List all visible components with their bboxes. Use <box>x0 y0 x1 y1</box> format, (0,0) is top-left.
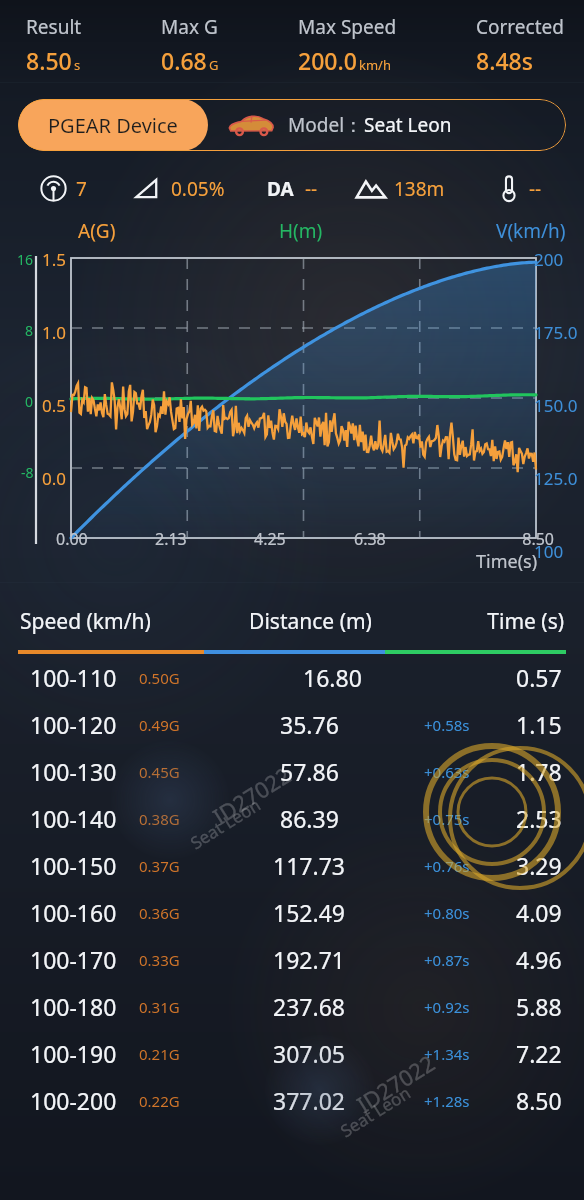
staticText: 377.02 <box>273 1085 345 1116</box>
staticText: 237.68 <box>273 991 345 1022</box>
staticText: 192.71 <box>273 944 345 975</box>
staticText: PGEAR Device <box>48 112 178 139</box>
staticText: 0.05% <box>171 176 225 202</box>
staticText: ID27022 <box>207 759 296 831</box>
staticText: 175.0 <box>534 321 578 344</box>
button[interactable]: PGEAR Device <box>18 99 208 151</box>
staticText: 1.15 <box>516 709 562 740</box>
button[interactable]: 100-140 <box>0 795 584 842</box>
staticText: +1.34s <box>424 1044 470 1064</box>
button[interactable]: 100-160 <box>0 889 584 936</box>
staticText: Time (s) <box>410 607 564 636</box>
other: Altitude <box>356 178 386 200</box>
other: Slope <box>133 175 160 202</box>
staticText: Corrected <box>476 14 564 40</box>
staticText: 8.48s <box>476 45 533 76</box>
staticText: 117.73 <box>273 850 345 881</box>
staticText: Max Speed <box>298 14 397 40</box>
staticText: A(G) <box>78 218 116 244</box>
button[interactable]: 100-120 <box>0 701 584 748</box>
staticText: +0.76s <box>424 856 470 876</box>
staticText: +0.75s <box>424 809 470 829</box>
staticText: 1.5 <box>42 248 67 271</box>
staticText: 100-160 <box>30 897 117 928</box>
staticText: Distance (m) <box>211 607 410 636</box>
staticText: 100-180 <box>30 991 117 1022</box>
other: Vehicle <box>228 113 274 137</box>
staticText: 16.80 <box>303 662 362 693</box>
staticText: 100-110 <box>30 662 117 693</box>
staticText: Seat Leon <box>364 112 452 138</box>
staticText: 2.13 <box>155 528 254 550</box>
staticText: DA <box>267 176 294 202</box>
button[interactable]: 100-180 <box>0 983 584 1030</box>
other: GPS satellites <box>40 175 67 202</box>
staticText: Speed (km/h) <box>20 607 211 636</box>
staticText: 0.50G <box>139 668 180 688</box>
staticText: -- <box>305 176 318 202</box>
staticText: 1.78 <box>516 756 562 787</box>
staticText: 138m <box>394 176 445 202</box>
staticText: 0.36G <box>139 903 180 923</box>
staticText: 200.0 <box>298 45 357 76</box>
staticText: Result <box>26 14 82 40</box>
staticText: 0.37G <box>139 856 180 876</box>
staticText: 100-200 <box>30 1085 117 1116</box>
staticText: Seat Leon <box>186 793 265 854</box>
staticText: 5.88 <box>516 991 562 1022</box>
staticText: +0.87s <box>424 950 470 970</box>
staticText: 100-140 <box>30 803 117 834</box>
staticText: 0.22G <box>139 1091 180 1111</box>
staticText: 1.0 <box>42 321 67 344</box>
staticText: 307.05 <box>273 1038 345 1069</box>
button[interactable]: 100-130 <box>0 748 584 795</box>
staticText: H(m) <box>279 218 323 244</box>
staticText: 0.33G <box>139 950 180 970</box>
staticText: 6.38 <box>354 528 454 550</box>
staticText: 100-150 <box>30 850 117 881</box>
staticText: ID27022 <box>351 1047 440 1119</box>
staticText: 2.53 <box>516 803 562 834</box>
staticText: 7.22 <box>516 1038 562 1069</box>
staticText: 16 <box>17 250 34 269</box>
staticText: 7 <box>76 176 87 202</box>
staticText: 57.86 <box>280 756 339 787</box>
staticText: Max G <box>161 14 218 40</box>
staticText: 0.68 <box>161 45 207 76</box>
staticText: 125.0 <box>534 467 578 490</box>
staticText: 4.96 <box>516 944 562 975</box>
staticText: +1.28s <box>424 1091 470 1111</box>
staticText: s <box>74 56 81 74</box>
staticText: 8.50 <box>26 45 72 76</box>
staticText: km/h <box>359 56 391 74</box>
staticText: Time(s) <box>476 549 538 574</box>
staticText: 4.25 <box>254 528 354 550</box>
staticText: Seat Leon <box>336 1081 415 1142</box>
staticText: 200 <box>534 248 564 271</box>
staticText: +0.63s <box>424 762 470 782</box>
staticText: 8.50 <box>454 528 554 550</box>
staticText: G <box>209 56 219 74</box>
staticText: Model： <box>288 112 364 138</box>
staticText: 0.45G <box>139 762 180 782</box>
staticText: 3.29 <box>516 850 562 881</box>
staticText: 8 <box>25 321 34 340</box>
staticText: 4.09 <box>516 897 562 928</box>
button[interactable]: 100-150 <box>0 842 584 889</box>
staticText: 0.57 <box>516 662 562 693</box>
button[interactable]: 100-170 <box>0 936 584 983</box>
button[interactable]: PGEAR Device <box>18 99 566 151</box>
button[interactable]: 100-200 <box>0 1077 584 1124</box>
staticText: 152.49 <box>273 897 345 928</box>
staticText: 0 <box>25 392 34 411</box>
button[interactable]: 100-190 <box>0 1030 584 1077</box>
staticText: 100-120 <box>30 709 117 740</box>
staticText: 35.76 <box>280 709 339 740</box>
staticText: +0.58s <box>424 715 470 735</box>
staticText: 150.0 <box>534 394 578 417</box>
staticText: 8.50 <box>516 1085 562 1116</box>
button[interactable]: 100-110 <box>0 654 584 701</box>
staticText: +0.92s <box>424 997 470 1017</box>
staticText: 86.39 <box>280 803 339 834</box>
staticText: -- <box>529 176 542 202</box>
